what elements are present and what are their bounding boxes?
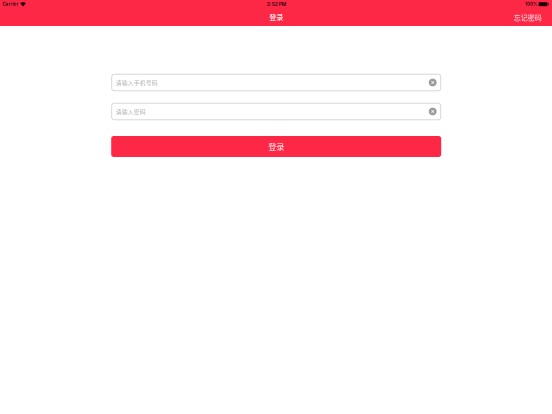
staticText: 忘记密码 — [514, 12, 542, 22]
staticText: 100% — [525, 2, 537, 7]
button[interactable]: Clear text — [426, 75, 440, 89]
staticText: 登录 — [268, 140, 284, 152]
staticText: 登录 — [269, 12, 283, 22]
staticText: 请输入手机号码 — [116, 78, 158, 87]
staticText: 请输入密码 — [116, 107, 146, 116]
button[interactable]: Clear text — [426, 104, 440, 118]
button[interactable]: 请输入手机号码 — [111, 74, 441, 91]
button[interactable]: 忘记密码 — [510, 9, 546, 26]
staticText: Carrier — [2, 1, 18, 7]
staticText: 2:52 PM — [267, 1, 286, 7]
button[interactable]: 登录 — [111, 136, 441, 157]
button[interactable]: 请输入密码 — [111, 103, 441, 120]
